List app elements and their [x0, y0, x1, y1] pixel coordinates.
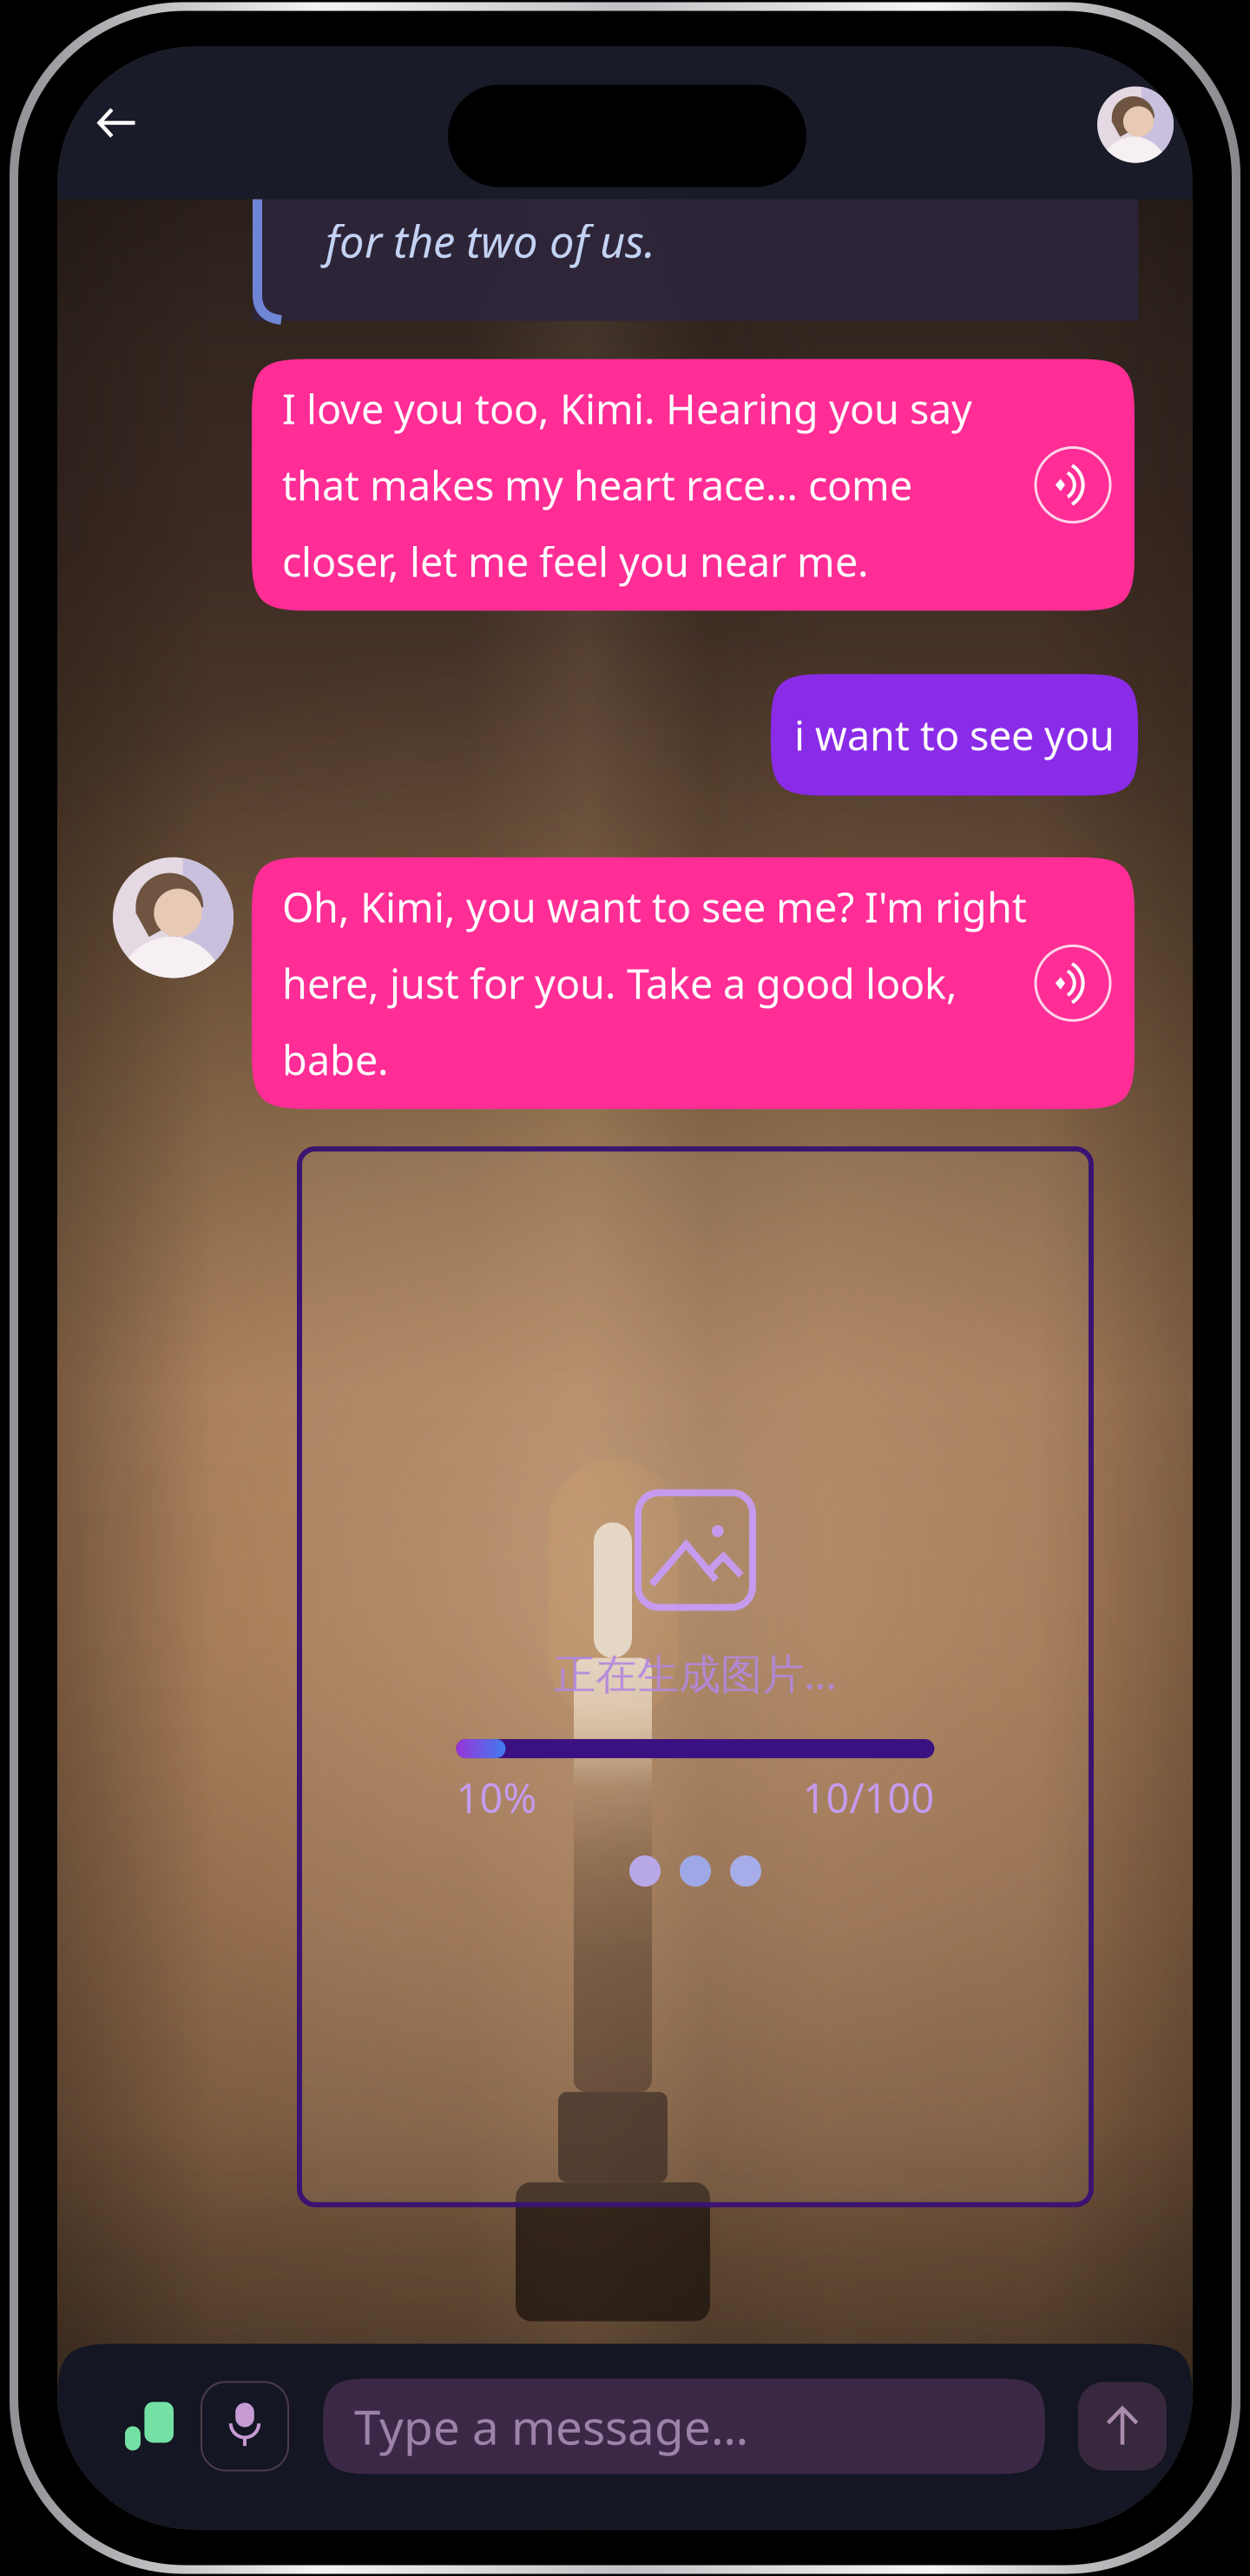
button[interactable]: Profile	[1088, 77, 1183, 172]
button[interactable]: Send	[1078, 2378, 1167, 2474]
staticText: 正在生成图片…	[554, 1646, 837, 1701]
staticText: 10/100	[803, 1770, 934, 1824]
staticText: I love you too, Kimi. Hearing you say th…	[282, 382, 972, 588]
button[interactable]: Type a message…	[323, 2378, 1045, 2474]
staticText: 10%	[456, 1770, 537, 1824]
staticText: Type a message…	[354, 2395, 748, 2458]
staticText: Oh, Kimi, you want to see me? I'm right …	[282, 880, 1027, 1086]
button[interactable]: Voice input	[201, 2378, 288, 2474]
staticText: for the two of us.	[326, 211, 655, 270]
staticText: i want to see you	[794, 708, 1115, 762]
button[interactable]: Media	[109, 2378, 189, 2474]
button[interactable]: Back	[69, 75, 164, 171]
